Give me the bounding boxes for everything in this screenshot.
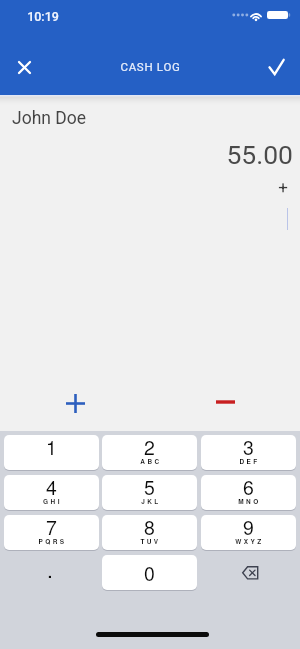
button[interactable]: Close	[4, 47, 44, 87]
staticText: JKL	[141, 497, 161, 506]
staticText: 2	[144, 435, 155, 461]
staticText: PQRS	[38, 537, 67, 546]
button[interactable]: Backspace	[201, 555, 296, 590]
button[interactable]: 5	[102, 475, 197, 510]
staticText: ABC	[140, 457, 162, 466]
staticText: .	[47, 554, 53, 584]
staticText: +	[278, 177, 288, 197]
button[interactable]: 8	[102, 515, 197, 550]
staticText: 0	[144, 559, 155, 587]
button[interactable]: 2	[102, 435, 197, 470]
button[interactable]: 9	[201, 515, 296, 550]
staticText: 55.00	[180, 139, 293, 170]
button[interactable]: 3	[201, 435, 296, 470]
staticText: 4	[46, 475, 57, 501]
staticText: 8	[144, 515, 155, 541]
staticText: WXYZ	[235, 537, 264, 546]
button[interactable]: 1	[4, 435, 99, 470]
staticText: 10:19	[27, 9, 59, 24]
staticText: DEF	[239, 457, 260, 466]
staticText: TUV	[140, 537, 161, 546]
staticText: John Doe	[12, 108, 87, 129]
staticText: 9	[243, 515, 254, 541]
staticText: CASH LOG	[120, 60, 181, 73]
button[interactable]: 0	[102, 555, 197, 590]
staticText: GHI	[43, 497, 62, 506]
staticText: MNO	[238, 497, 261, 506]
button[interactable]: 4	[4, 475, 99, 510]
button[interactable]: Save	[256, 47, 296, 87]
staticText: 7	[46, 515, 57, 541]
staticText: 6	[243, 475, 254, 501]
button[interactable]: 7	[4, 515, 99, 550]
staticText: 1	[46, 435, 57, 461]
button[interactable]: 6	[201, 475, 296, 510]
staticText: 3	[243, 435, 254, 461]
button[interactable]: Add amount	[53, 381, 97, 425]
button[interactable]: .	[4, 555, 99, 590]
button[interactable]: Subtract amount	[203, 380, 247, 424]
staticText: 5	[144, 475, 155, 501]
